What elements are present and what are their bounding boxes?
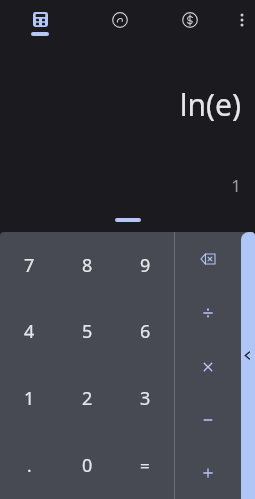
staticText: 7 (24, 253, 35, 278)
button[interactable]: 8 (58, 232, 116, 298)
button[interactable]: Open advanced pad (241, 232, 255, 499)
button[interactable]: History (104, 0, 136, 48)
staticText: 0 (82, 453, 93, 478)
staticText: ln(e) (179, 84, 241, 125)
button[interactable]: Backspace (175, 232, 241, 286)
staticText: 1 (24, 386, 35, 411)
button[interactable]: Add (175, 446, 241, 499)
button[interactable]: Divide (175, 286, 241, 340)
button[interactable]: 2 (58, 365, 116, 432)
staticText: 1 (231, 174, 241, 197)
button[interactable]: 1 (0, 365, 58, 432)
button[interactable]: Calculator (24, 0, 56, 48)
button[interactable]: Unit converter (174, 0, 206, 48)
button[interactable]: More options (228, 0, 255, 48)
button[interactable]: 7 (0, 232, 58, 298)
staticText: 6 (140, 319, 151, 344)
button[interactable]: 3 (116, 365, 174, 432)
button[interactable]: 6 (116, 298, 174, 365)
staticText: = (140, 454, 150, 477)
button[interactable]: 5 (58, 298, 116, 365)
button[interactable]: . (0, 432, 58, 499)
staticText: 5 (82, 319, 93, 344)
button[interactable]: = (116, 432, 174, 499)
staticText: 4 (24, 319, 35, 344)
staticText: 9 (140, 253, 151, 278)
staticText: 2 (82, 386, 93, 411)
staticText: . (27, 454, 32, 477)
button[interactable]: Subtract (175, 393, 241, 446)
button[interactable]: 9 (116, 232, 174, 298)
button[interactable]: Multiply (175, 340, 241, 393)
button[interactable]: 0 (58, 432, 116, 499)
button[interactable]: 4 (0, 298, 58, 365)
staticText: 3 (140, 386, 151, 411)
staticText: 8 (82, 253, 93, 278)
